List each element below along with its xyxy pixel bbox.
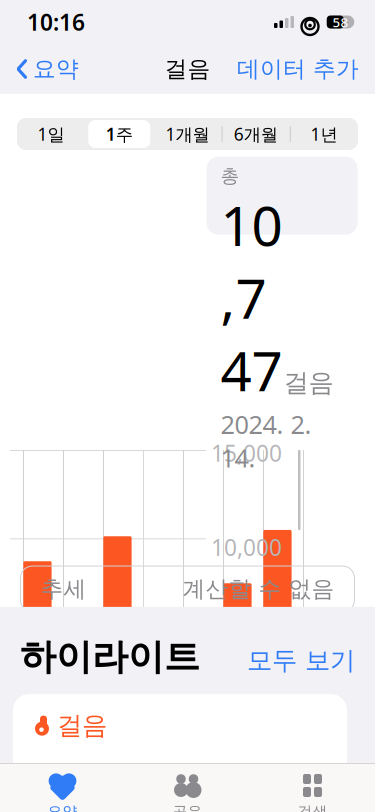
- button[interactable]: 요약: [0, 771, 125, 812]
- staticText: 요약: [47, 802, 77, 812]
- button[interactable]: 6개월: [222, 118, 290, 150]
- staticText: 10,000: [211, 532, 282, 562]
- button[interactable]: 요약: [8, 49, 79, 89]
- staticText: 추세: [40, 575, 86, 603]
- staticText: 하이라이트: [20, 635, 200, 679]
- staticText: 2024. 2. 14.: [221, 407, 312, 475]
- staticText: 금: [66, 724, 89, 751]
- staticText: 1일: [38, 122, 65, 145]
- button[interactable]: 1년: [290, 118, 358, 150]
- staticText: 10:16: [27, 7, 85, 37]
- staticText: 1개월: [165, 122, 209, 145]
- button[interactable]: 데이터 추가: [237, 49, 367, 89]
- staticText: 10,747: [221, 188, 283, 406]
- staticText: 모두 보기: [247, 645, 355, 676]
- staticText: 6개월: [234, 122, 278, 145]
- button[interactable]: 검색: [250, 771, 375, 812]
- staticText: 총: [221, 165, 240, 187]
- staticText: 15,000: [211, 438, 282, 468]
- staticText: 1주: [106, 122, 133, 145]
- staticText: 걸음: [57, 710, 107, 741]
- staticText: 검색: [297, 802, 327, 812]
- staticText: 걸음: [164, 55, 210, 83]
- staticText: 계산할 수 없음: [182, 575, 334, 603]
- staticText: 1년: [310, 122, 337, 145]
- staticText: 데이터 추가: [237, 55, 359, 83]
- staticText: 5,000: [211, 626, 269, 656]
- staticText: 걸음: [284, 367, 334, 398]
- staticText: 58: [332, 13, 348, 31]
- staticText: 요약: [33, 55, 79, 83]
- staticText: 현재 걸음 수가 평소 이 시간보다 늘었습니다.: [33, 757, 330, 812]
- staticText: 공유: [172, 802, 202, 812]
- button[interactable]: 1주: [85, 118, 153, 150]
- staticText: 목: [26, 724, 49, 751]
- button[interactable]: 1개월: [153, 118, 222, 150]
- button[interactable]: 모두 보기: [239, 641, 355, 680]
- button[interactable]: 걸음: [13, 694, 347, 784]
- button[interactable]: 1일: [17, 118, 85, 150]
- button[interactable]: 추세: [20, 566, 354, 612]
- button[interactable]: 공유: [125, 771, 250, 812]
